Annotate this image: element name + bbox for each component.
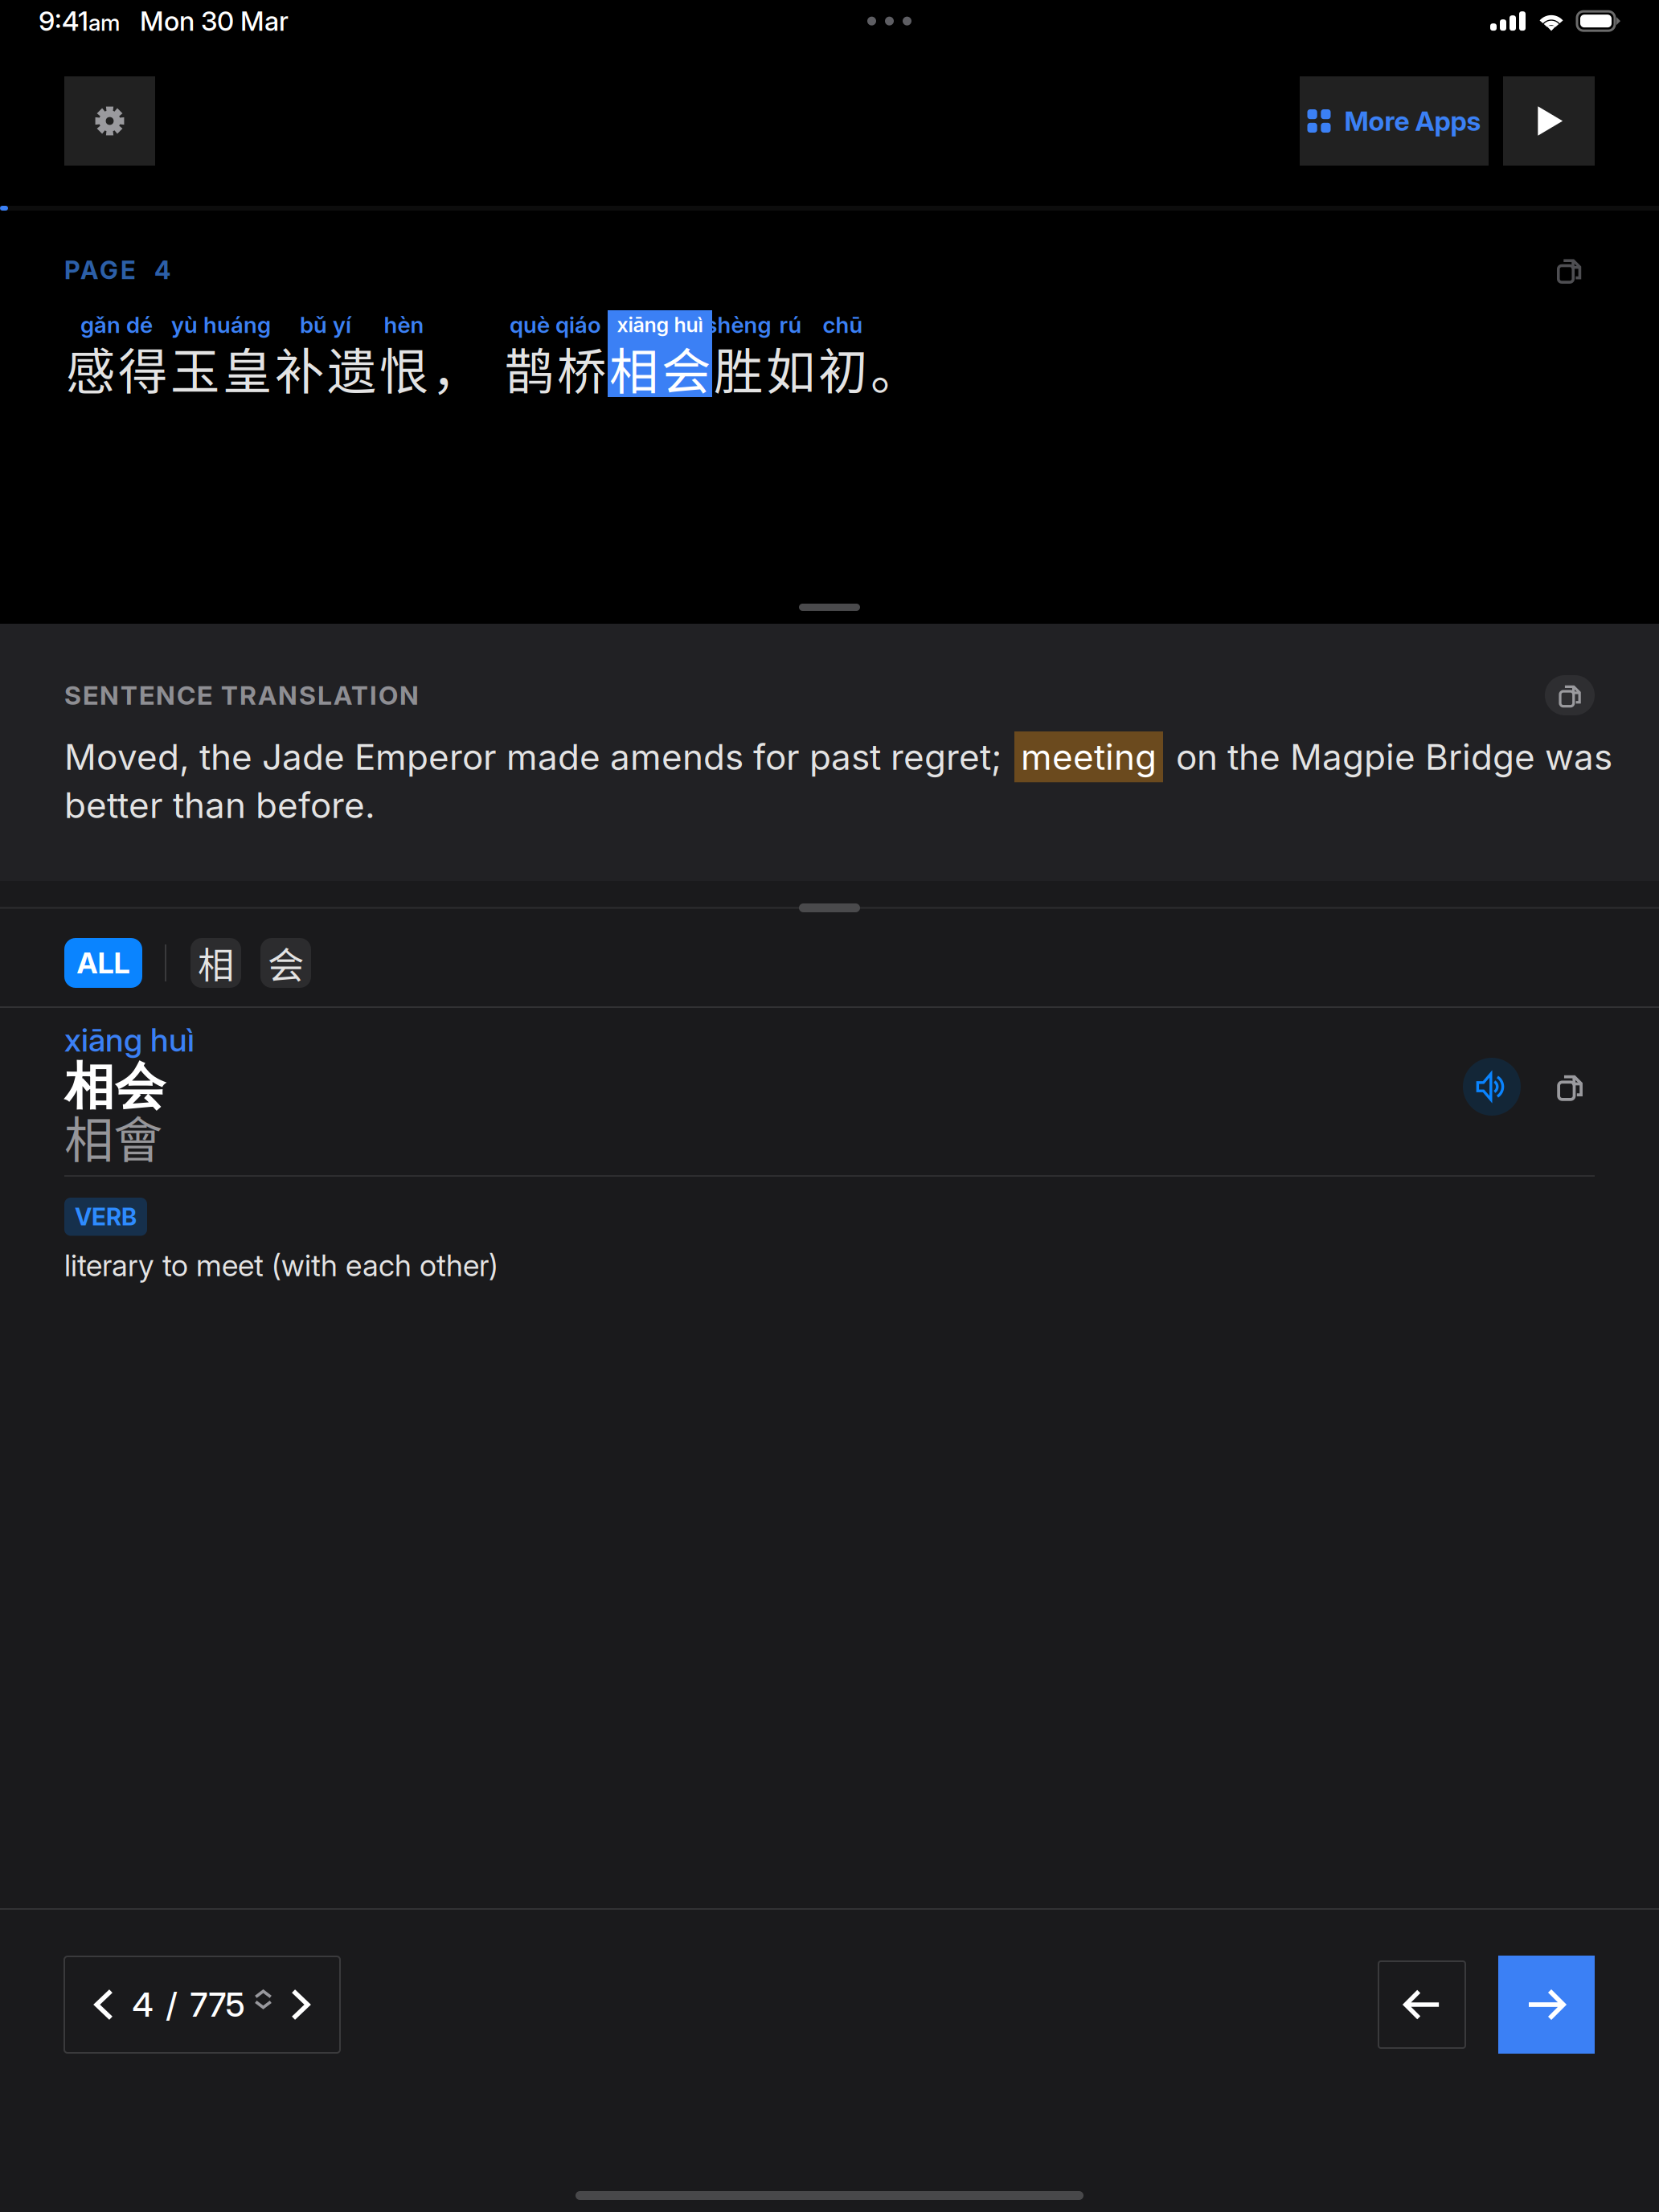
staticText: yù huáng xyxy=(171,311,271,338)
staticText: on the Magpie Bridge was xyxy=(1176,735,1612,778)
button[interactable]: Play xyxy=(1503,76,1595,166)
button[interactable]: Copy sentence xyxy=(1543,244,1595,296)
button[interactable]: Back xyxy=(1378,1961,1465,2048)
staticText: / xyxy=(166,1985,177,2025)
button[interactable]: Next page xyxy=(272,1976,328,2033)
button[interactable]: Settings xyxy=(64,76,155,166)
staticText: gǎn dé xyxy=(80,311,153,338)
button[interactable]: Copy word xyxy=(1545,1062,1595,1112)
staticText: 遗 xyxy=(327,332,376,404)
staticText: am xyxy=(88,9,121,36)
button[interactable]: Previous page xyxy=(76,1976,132,2033)
staticText: rú xyxy=(779,311,802,338)
staticText: 。 xyxy=(870,332,920,404)
staticText: hèn xyxy=(384,311,424,338)
staticText: 会 xyxy=(268,937,304,989)
button[interactable]: 相 xyxy=(190,938,241,988)
staticText: 鹊 xyxy=(505,332,554,404)
staticText: PAGE 4 xyxy=(64,255,170,285)
staticText: 相 xyxy=(609,332,658,404)
staticText: 补 xyxy=(275,332,324,404)
staticText: 相会 xyxy=(64,1055,166,1118)
staticText: Mon 30 Mar xyxy=(121,5,289,37)
button[interactable]: More Apps xyxy=(1300,76,1489,166)
staticText: 4 xyxy=(132,1985,153,2025)
staticText: 会 xyxy=(662,332,711,404)
staticText: ， xyxy=(432,332,481,404)
button[interactable]: Copy translation xyxy=(1545,670,1595,720)
staticText: 相 xyxy=(198,937,234,989)
staticText: meeting xyxy=(1021,735,1157,778)
staticText: ALL xyxy=(77,945,130,980)
button[interactable]: Pronounce xyxy=(1463,1058,1521,1116)
staticText: 初 xyxy=(818,332,867,404)
staticText: literary to meet (with each other) xyxy=(64,1247,498,1283)
staticText: Moved, the Jade Emperor made amends for … xyxy=(64,735,1002,778)
staticText: 皇 xyxy=(223,332,272,404)
staticText: 感 xyxy=(66,332,115,404)
staticText: More Apps xyxy=(1344,105,1481,137)
staticText: 9:41 xyxy=(39,5,88,37)
button[interactable]: ALL xyxy=(64,938,142,988)
button[interactable]: Forward xyxy=(1498,1956,1595,2054)
staticText: VERB xyxy=(75,1202,137,1231)
staticText: 桥 xyxy=(557,332,606,404)
staticText: bǔ yí xyxy=(300,311,351,338)
staticText: 如 xyxy=(766,332,815,404)
staticText: 胜 xyxy=(714,332,763,404)
staticText: shèng xyxy=(705,311,771,338)
staticText: 恨 xyxy=(379,332,428,404)
staticText: better than before. xyxy=(64,784,375,827)
staticText: què qiáo xyxy=(510,311,601,338)
button[interactable]: 会 xyxy=(260,938,311,988)
staticText: 相會 xyxy=(64,1101,162,1172)
staticText: 得 xyxy=(118,332,167,404)
staticText: xiāng huì xyxy=(617,312,703,337)
staticText: 775 xyxy=(190,1985,245,2025)
staticText: 玉 xyxy=(170,332,219,404)
staticText: chū xyxy=(823,311,863,338)
staticText: SENTENCE TRANSLATION xyxy=(64,680,419,711)
staticText: xiāng huì xyxy=(64,1020,195,1059)
